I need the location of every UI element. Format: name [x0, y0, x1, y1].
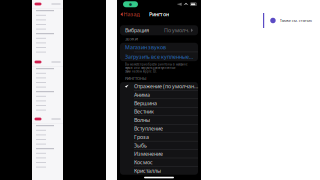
staticText: Загрузить все купленные звуки — [125, 53, 193, 60]
staticText: Отражение (по умолчанию) — [134, 83, 198, 90]
staticText: ЗВУКИ — [125, 36, 138, 42]
staticText: звуки на этом Apple ID. — [125, 70, 157, 73]
staticText: Волны — [134, 116, 150, 123]
button[interactable]: Загрузить все купленные звуки — [120, 52, 198, 61]
staticText: По умолч. — [164, 27, 189, 34]
button[interactable]: Волны — [120, 116, 198, 124]
button[interactable]: Назад — [117, 9, 143, 19]
staticText: ⬤ — [129, 3, 132, 6]
button[interactable]: Вступление — [120, 124, 198, 132]
staticText: Космос — [134, 159, 153, 166]
staticText: Зыбь — [134, 142, 147, 149]
staticText: Анима — [134, 91, 150, 98]
staticText: Рингтон — [149, 11, 169, 18]
staticText: звуков или загрузить ранее купленные — [125, 66, 175, 70]
button[interactable]: Вибрация — [120, 25, 198, 35]
button[interactable]: Космос — [120, 158, 198, 166]
button[interactable]: Зыбь — [120, 141, 198, 149]
staticText: Гроза — [134, 133, 149, 140]
staticText: Вибрация — [125, 27, 149, 34]
staticText: Вступление — [134, 125, 163, 132]
staticText: Магазин звуков — [125, 44, 166, 51]
staticText: Кристаллы — [134, 167, 161, 174]
button[interactable]: Гроза — [120, 133, 198, 141]
staticText: Вершина — [134, 99, 157, 107]
button[interactable]: Отражение (по умолчанию) — [120, 82, 198, 90]
button[interactable]: Вершина — [120, 99, 198, 107]
button[interactable]: Вестник — [120, 107, 198, 116]
staticText: Изменение — [134, 150, 163, 157]
staticText: Вы можете приобрести рингтоны в магазине — [125, 63, 187, 66]
button[interactable]: Анима — [120, 91, 198, 99]
button[interactable]: Магазин звуков — [120, 43, 198, 52]
button[interactable]: Кристаллы — [120, 167, 198, 175]
staticText: Вестник — [134, 108, 154, 115]
button[interactable]: Изменение — [120, 150, 198, 158]
staticText: Также см. статью — [280, 18, 312, 23]
staticText: РИНГТОНЫ — [125, 76, 146, 81]
staticText: Назад — [123, 11, 139, 18]
